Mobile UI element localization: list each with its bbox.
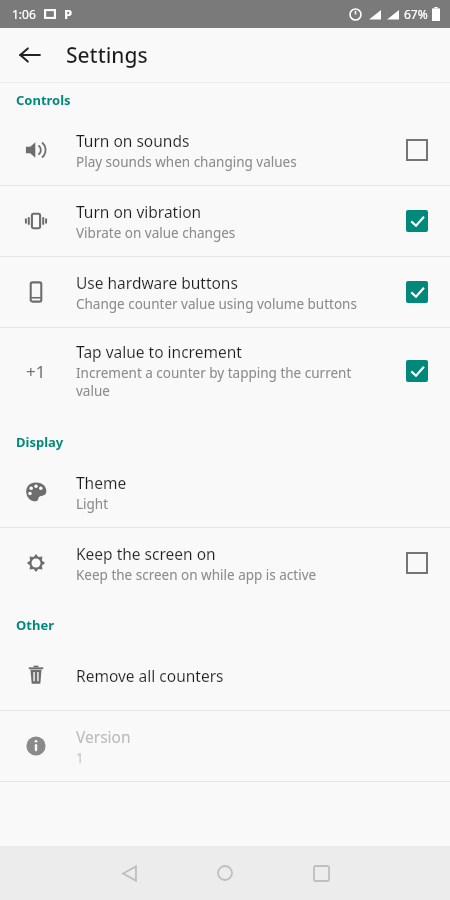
- staticText: Play sounds when changing values: [76, 153, 297, 171]
- staticText: Light: [76, 495, 109, 513]
- staticText: Keep the screen on while app is active: [76, 566, 317, 584]
- button[interactable]: Keep the screen on: [0, 528, 450, 598]
- staticText: Settings: [66, 41, 148, 70]
- button[interactable]: Back: [8, 33, 52, 77]
- staticText: 67%: [404, 6, 428, 22]
- button[interactable]: Home: [197, 846, 253, 900]
- button[interactable]: Unchecked: [400, 546, 434, 580]
- button[interactable]: Theme: [0, 457, 450, 527]
- staticText: P: [64, 5, 73, 23]
- staticText: Tap value to increment: [76, 341, 242, 362]
- staticText: Use hardware buttons: [76, 272, 238, 293]
- button[interactable]: Turn on vibration: [0, 186, 450, 256]
- staticText: Display: [16, 433, 64, 451]
- staticText: Increment a counter by tapping the curre…: [76, 364, 388, 400]
- staticText: Other: [16, 616, 54, 634]
- staticText: Controls: [16, 91, 71, 109]
- button[interactable]: Turn on sounds: [0, 115, 450, 185]
- staticText: Remove all counters: [76, 665, 224, 686]
- button[interactable]: Use hardware buttons: [0, 257, 450, 327]
- staticText: Keep the screen on: [76, 543, 216, 564]
- staticText: Turn on vibration: [76, 201, 202, 222]
- staticText: Version: [76, 726, 131, 747]
- button[interactable]: Version: [0, 711, 450, 781]
- staticText: 1:06: [12, 6, 36, 22]
- staticText: 1: [76, 749, 84, 767]
- staticText: Turn on sounds: [76, 130, 190, 151]
- button[interactable]: Remove all counters: [0, 640, 450, 710]
- button[interactable]: Checked: [400, 275, 434, 309]
- button[interactable]: Unchecked: [400, 133, 434, 167]
- staticText: +1: [26, 360, 46, 383]
- button[interactable]: +1: [0, 328, 450, 413]
- staticText: Theme: [76, 472, 127, 493]
- button[interactable]: Checked: [400, 204, 434, 238]
- button[interactable]: Back: [101, 846, 157, 900]
- staticText: Change counter value using volume button…: [76, 295, 357, 313]
- button[interactable]: Recent apps: [293, 846, 349, 900]
- staticText: Vibrate on value changes: [76, 224, 236, 242]
- button[interactable]: Checked: [400, 354, 434, 388]
